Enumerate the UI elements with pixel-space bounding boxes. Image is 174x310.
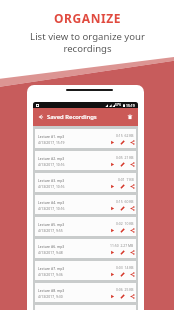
button[interactable]: Delete [126,113,134,121]
staticText: Lecture #3. mp3 [38,178,65,183]
button[interactable]: Lecture #6. mp3 [35,239,136,258]
staticText: 4/13/2017, 10:16 [38,206,65,211]
button[interactable]: Lecture #7. mp3 [35,261,136,280]
staticText: 4/13/2017, 9:36 [38,272,63,277]
staticText: 4/13/2017, 9:30 [38,294,63,299]
staticText: Lecture #2. mp3 [38,156,65,161]
button[interactable]: Back [37,113,45,121]
button[interactable]: Edit [120,294,125,299]
button[interactable]: Share [130,228,135,233]
staticText: 4/13/2017, 10:16 [38,162,65,167]
staticText: List view to organize your recordings [30,30,145,55]
staticText: 0:01 7 KB [118,177,134,182]
button[interactable]: Edit [120,162,125,167]
staticText: 4/13/2017, 15:19 [38,140,65,145]
staticText: 11:50 2.27 MB [110,243,134,248]
button[interactable]: Play [110,272,115,277]
button[interactable]: Edit [120,140,125,145]
staticText: 0:06 25 KB [116,287,134,292]
button[interactable]: Play [110,140,115,145]
button[interactable]: Share [130,206,135,211]
staticText: 4/13/2017, 9:48 [38,250,63,255]
button[interactable]: Edit [120,184,125,189]
button[interactable]: Edit [120,272,125,277]
button[interactable]: Share [130,184,135,189]
staticText: 0:02 10 KB [116,221,134,226]
button[interactable]: Lecture #3. mp3 [35,173,136,192]
button[interactable]: Lecture #8. mp3 [35,283,136,302]
button[interactable]: Lecture #2. mp3 [35,151,136,170]
staticText: Saved Recordings [47,113,97,121]
staticText: Lecture #6. mp3 [38,244,65,249]
button[interactable]: Play [110,294,115,299]
button[interactable]: Share [130,250,135,255]
button[interactable]: Edit [120,206,125,211]
button[interactable]: Share [130,272,135,277]
staticText: Lecture #7. mp3 [38,266,65,271]
button[interactable]: Share [130,294,135,299]
button[interactable]: Play [110,250,115,255]
button[interactable]: Share [130,140,135,145]
button[interactable]: Play [110,228,115,233]
staticText: 15:19 [126,103,135,108]
button[interactable]: Share [130,162,135,167]
button[interactable]: Lecture #5. mp3 [35,217,136,236]
staticText: 0:05 21 KB [116,155,134,160]
staticText: Lecture #4. mp3 [38,200,65,205]
staticText: Lecture #8. mp3 [38,288,65,293]
staticText: 0:03 14 KB [116,265,134,270]
button[interactable]: Edit [120,228,125,233]
button[interactable]: Edit [120,250,125,255]
button[interactable]: Play [110,206,115,211]
staticText: 0:15 60 KB [116,199,134,204]
staticText: 4/13/2017, 10:16 [38,184,65,189]
button[interactable]: Play [110,162,115,167]
staticText: ORGANIZE [54,10,121,26]
button[interactable]: Lecture #4. mp3 [35,195,136,214]
staticText: 57% [115,103,122,107]
button[interactable]: Play [110,184,115,189]
button[interactable]: Lecture #1. mp3 [35,129,136,148]
staticText: 0:15 62 KB [116,133,134,138]
staticText: 4/13/2017, 9:55 [38,228,63,233]
staticText: Lecture #1. mp3 [38,134,65,139]
staticText: Lecture #5. mp3 [38,222,65,227]
